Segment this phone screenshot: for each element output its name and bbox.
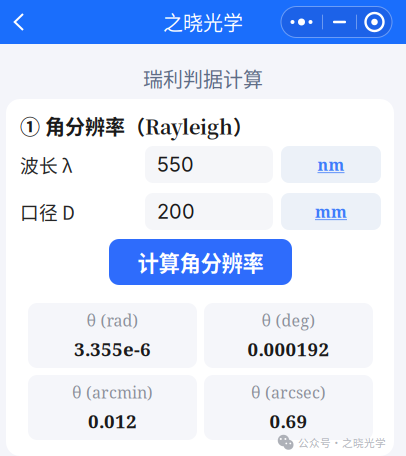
staticText: 公众号·之晓光学 (298, 435, 386, 450)
button[interactable]: mm (281, 193, 381, 230)
staticText: 0.000192 (247, 336, 329, 362)
staticText: θ (deg) (261, 309, 315, 331)
staticText: 0.69 (269, 408, 307, 434)
staticText: θ (arcmin) (72, 381, 153, 403)
staticText: 瑞利判据计算 (143, 64, 263, 93)
staticText: mm (315, 201, 347, 222)
staticText: 200 (157, 199, 195, 224)
staticText: 0.012 (88, 408, 137, 434)
staticText: θ (rad) (86, 309, 138, 331)
staticText: 之晓光学 (163, 7, 243, 36)
staticText: ① 角分辨率（Rayleigh） (20, 112, 253, 140)
button[interactable]: Back (0, 0, 38, 44)
button[interactable]: Menu (281, 6, 392, 37)
staticText: 550 (157, 152, 194, 177)
button[interactable]: 计算角分辨率 (109, 239, 292, 285)
staticText: 计算角分辨率 (137, 247, 263, 277)
staticText: 口径 D (20, 198, 75, 225)
staticText: nm (317, 154, 344, 175)
staticText: θ (arcsec) (251, 381, 326, 403)
staticText: 波长 λ (20, 151, 72, 178)
button[interactable]: nm (281, 146, 381, 183)
staticText: 3.355e-6 (74, 336, 151, 362)
